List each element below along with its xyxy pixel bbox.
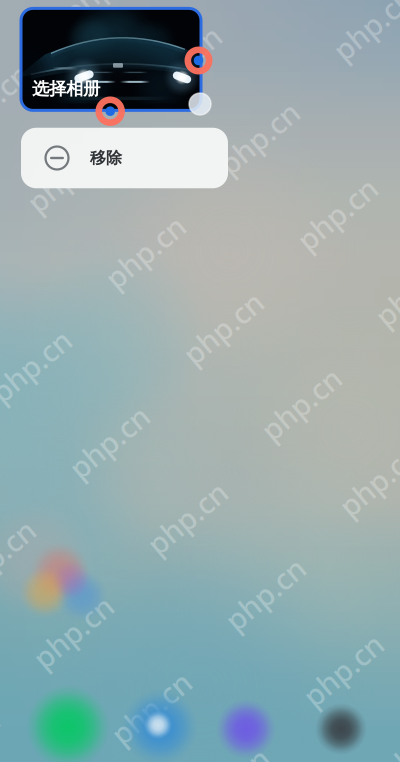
staticText: php.cn (326, 4, 400, 43)
staticText: php.cn (176, 308, 270, 347)
staticText: php.cn (56, 0, 150, 5)
button[interactable]: Resize widget (189, 93, 211, 115)
staticText: 选择相册 (32, 78, 100, 99)
staticText: php.cn (26, 612, 120, 651)
staticText: php.cn (104, 688, 198, 727)
staticText: php.cn (212, 118, 306, 157)
staticText: php.cn (332, 460, 400, 499)
staticText: 移除 (90, 148, 122, 168)
staticText: php.cn (290, 194, 384, 233)
staticText: php.cn (0, 536, 42, 575)
staticText: php.cn (20, 156, 114, 195)
staticText: php.cn (134, 42, 228, 81)
staticText: php.cn (0, 80, 36, 119)
staticText: php.cn (374, 726, 400, 762)
staticText: php.cn (0, 346, 78, 385)
button[interactable]: 移除 (21, 128, 228, 188)
staticText: php.cn (218, 574, 312, 613)
button[interactable]: 选择相册 (21, 8, 201, 110)
staticText: php.cn (296, 650, 390, 689)
staticText: php.cn (140, 498, 234, 537)
staticText: php.cn (62, 422, 156, 461)
staticText: php.cn (368, 270, 400, 309)
staticText: php.cn (254, 384, 348, 423)
staticText: php.cn (98, 232, 192, 271)
